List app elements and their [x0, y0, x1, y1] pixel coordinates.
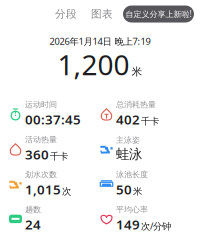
button[interactable]: 平均心率 [100, 205, 196, 233]
staticText: 24 [25, 215, 41, 233]
staticText: 分段 [55, 7, 77, 20]
staticText: 50 [116, 180, 132, 198]
button[interactable]: 划水次数 [9, 170, 100, 198]
staticText: 平均心率 [116, 205, 148, 214]
staticText: 米 [133, 186, 142, 197]
button[interactable]: 泳池长度 [100, 170, 196, 198]
staticText: 活动热量 [25, 135, 57, 144]
staticText: 360 [25, 145, 49, 163]
staticText: 主泳姿 [116, 135, 140, 145]
staticText: 00:37:45 [25, 110, 81, 128]
button[interactable]: 趟数 [9, 205, 100, 233]
staticText: 402 [116, 110, 140, 128]
button[interactable]: 主泳姿 [100, 135, 196, 162]
button[interactable]: 自定义分享上新啦! [123, 5, 194, 22]
staticText: 149 [116, 215, 140, 233]
button[interactable]: 分段 [55, 5, 77, 23]
staticText: 1,200 [57, 46, 129, 83]
staticText: 米 [131, 65, 142, 78]
button[interactable]: 运动时间 [9, 100, 100, 128]
staticText: 泳池长度 [116, 170, 148, 179]
staticText: 1,015 [25, 180, 61, 198]
staticText: 千卡 [50, 151, 68, 162]
staticText: 运动时间 [25, 100, 57, 109]
button[interactable]: 活动热量 [9, 135, 100, 163]
staticText: 趟数 [25, 205, 41, 214]
button[interactable]: 总消耗热量 [100, 100, 196, 128]
staticText: 蛙泳 [116, 146, 142, 162]
staticText: 千卡 [141, 116, 159, 127]
staticText: 划水次数 [25, 170, 57, 179]
staticText: 2026年1月14日 晚上7:19 [49, 35, 150, 47]
staticText: 次 [62, 186, 71, 197]
staticText: 次/分钟 [141, 220, 171, 232]
staticText: 自定义分享上新啦! [125, 9, 191, 19]
staticText: 总消耗热量 [116, 100, 156, 109]
staticText: 图表 [91, 7, 113, 20]
button[interactable]: 图表 [91, 5, 113, 23]
